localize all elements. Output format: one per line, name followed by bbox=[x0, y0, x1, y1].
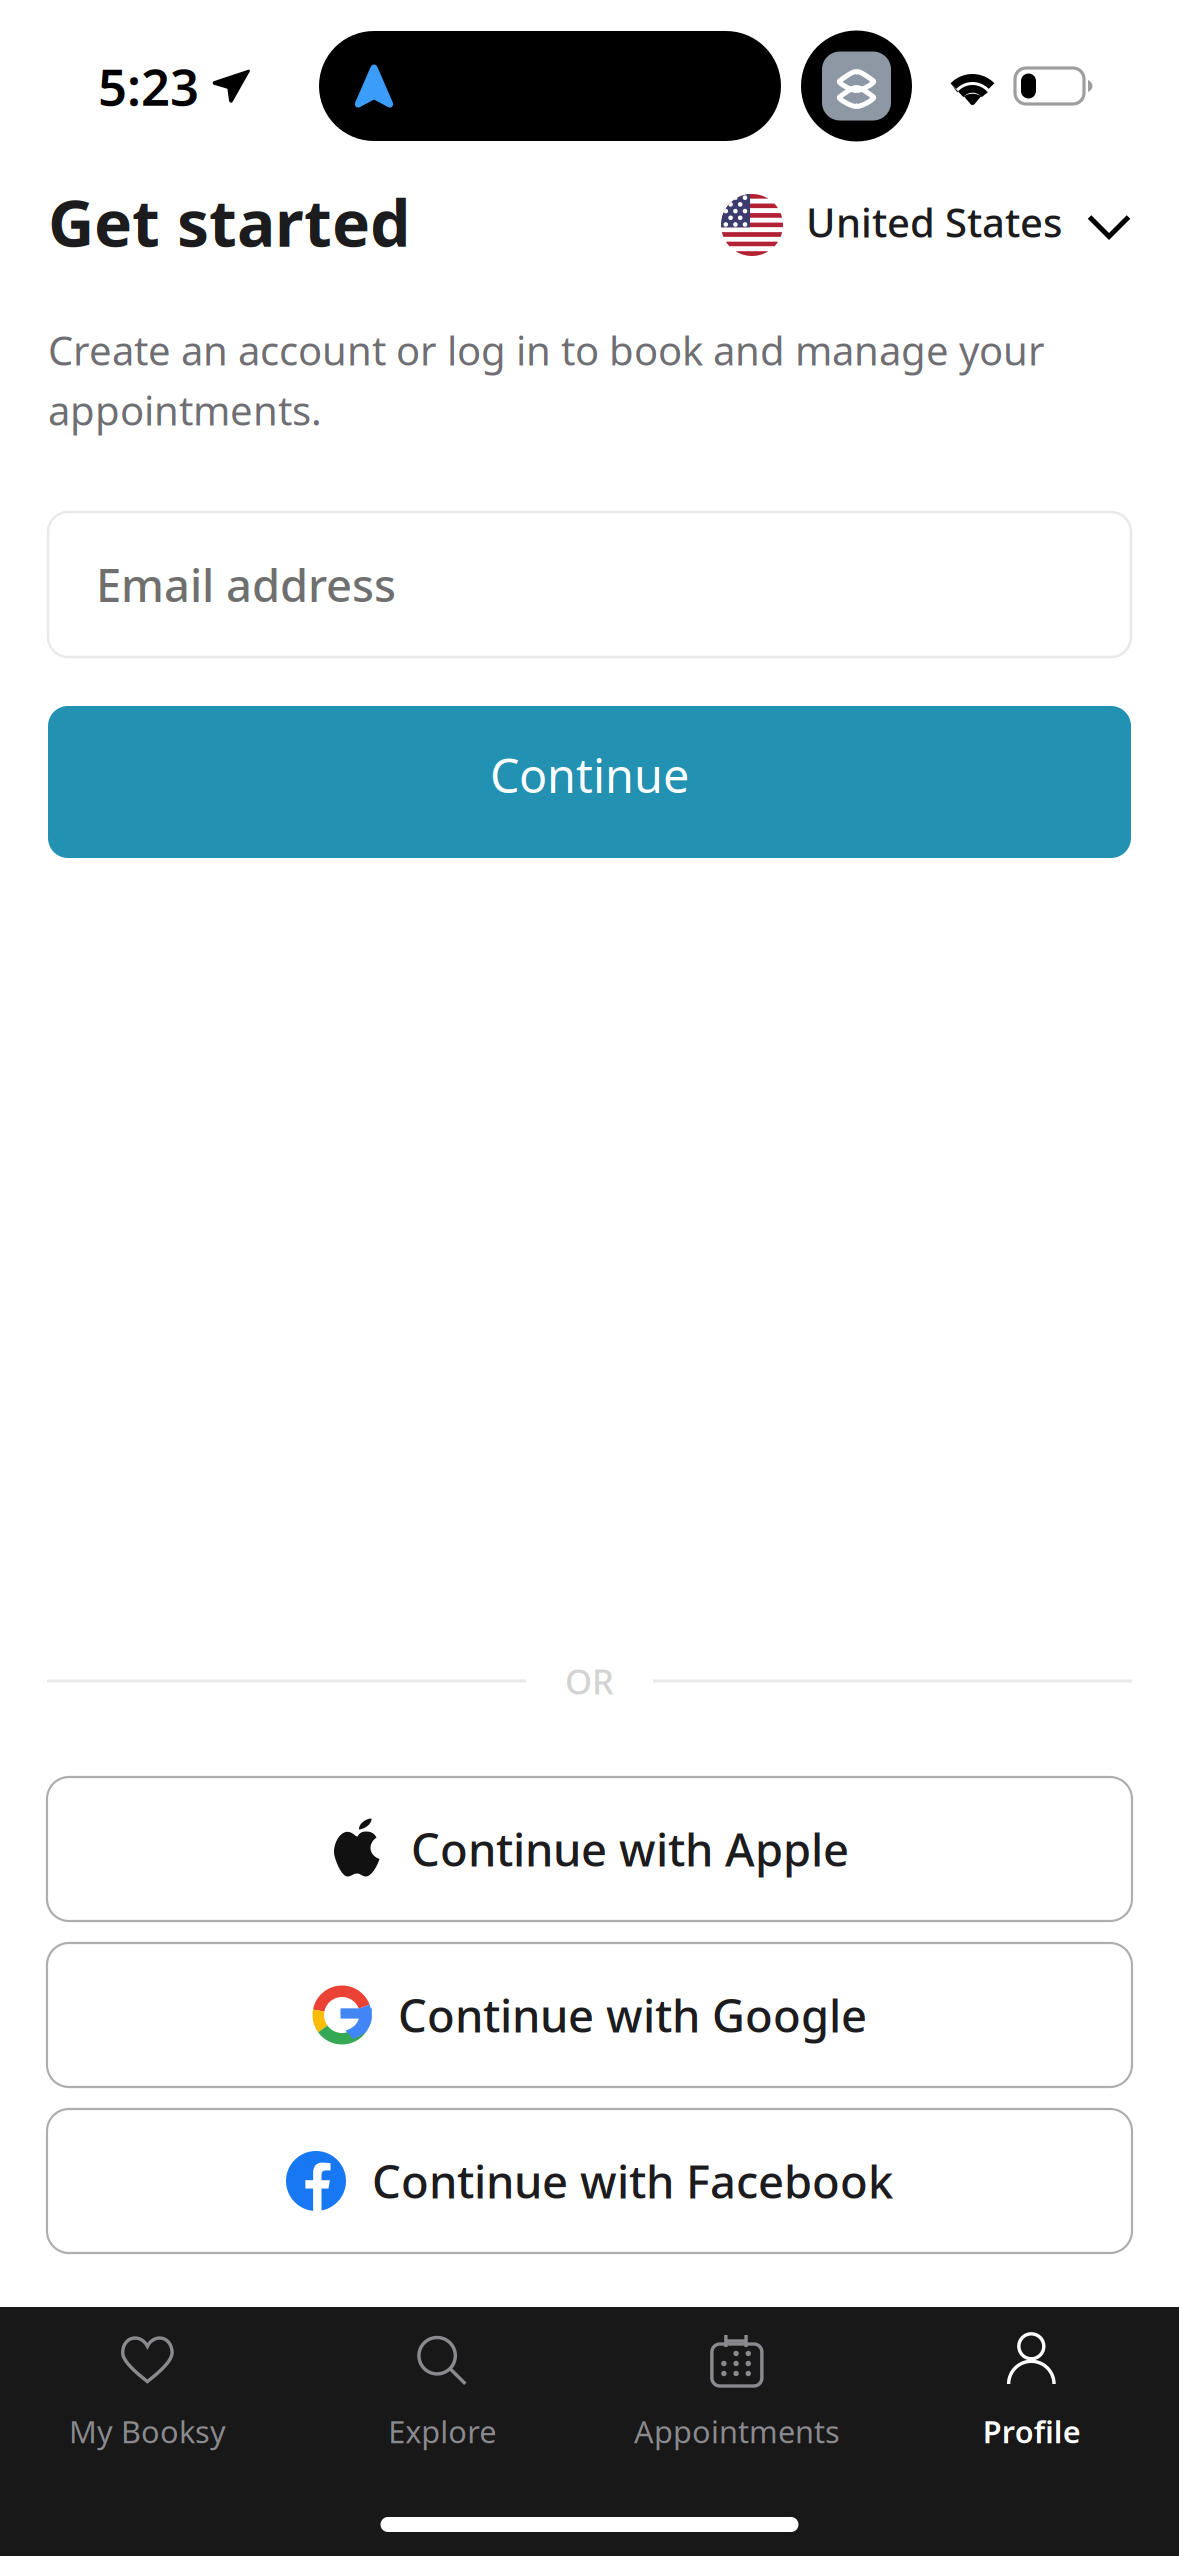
button[interactable]: My Booksy bbox=[0, 2307, 295, 2482]
staticText: Create an account or log in to book and … bbox=[48, 323, 1045, 376]
staticText: 5:23 bbox=[98, 52, 199, 120]
button[interactable]: Continue with Apple bbox=[47, 1777, 1132, 1921]
button[interactable]: Email address bbox=[48, 512, 1131, 657]
staticText: appointments. bbox=[48, 383, 322, 436]
staticText: Continue bbox=[490, 744, 689, 806]
staticText: Profile bbox=[983, 2411, 1081, 2452]
staticText: OR bbox=[565, 1658, 614, 1704]
staticText: Continue with Facebook bbox=[372, 2151, 893, 2211]
staticText: Email address bbox=[96, 554, 396, 615]
button[interactable]: Continue with Google bbox=[47, 1943, 1132, 2087]
staticText: My Booksy bbox=[69, 2411, 226, 2452]
button[interactable]: Explore bbox=[295, 2307, 590, 2482]
staticText: Appointments bbox=[634, 2411, 840, 2452]
button[interactable]: Continue with Facebook bbox=[47, 2109, 1132, 2253]
staticText: Explore bbox=[388, 2411, 496, 2452]
staticText: Continue with Google bbox=[398, 1985, 867, 2045]
staticText: United States bbox=[806, 195, 1062, 248]
staticText: Continue with Apple bbox=[411, 1819, 849, 1879]
button[interactable]: Profile bbox=[884, 2307, 1179, 2482]
button[interactable]: Appointments bbox=[589, 2307, 884, 2482]
button[interactable]: Continue bbox=[48, 706, 1131, 858]
button[interactable]: Country: United States bbox=[721, 191, 1131, 253]
staticText: Get started bbox=[48, 179, 410, 264]
